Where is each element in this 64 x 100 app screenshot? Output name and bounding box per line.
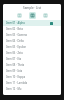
staticText: Item 08 · Theta bbox=[6, 63, 25, 67]
button[interactable]: Detail view bbox=[42, 12, 49, 19]
button[interactable]: Item 05 · Epsilon bbox=[3, 44, 61, 50]
button[interactable]: Item 04 · Delta bbox=[3, 38, 61, 44]
staticText: Item 04 · Delta bbox=[6, 39, 24, 43]
button[interactable]: Item 11 · Lambda bbox=[3, 80, 61, 86]
staticText: Item 03 · Gamma bbox=[6, 33, 28, 37]
staticText: Item 01 · Alpha bbox=[6, 21, 25, 25]
staticText: Item 11 · Lambda bbox=[6, 81, 28, 85]
staticText: Item 10 · Kappa bbox=[6, 75, 26, 79]
staticText: Item 09 · Iota bbox=[6, 69, 23, 73]
staticText: Item 06 · Zeta bbox=[6, 51, 23, 55]
button[interactable]: Item 09 · Iota bbox=[3, 68, 61, 74]
button[interactable]: Item 12 · Mu bbox=[3, 86, 61, 92]
button[interactable]: Item 06 · Zeta bbox=[3, 50, 61, 56]
button[interactable]: Item 02 · Beta bbox=[3, 26, 61, 32]
staticText: Item 05 · Epsilon bbox=[6, 45, 27, 49]
staticText: Item 12 · Mu bbox=[6, 87, 22, 91]
button[interactable]: List view bbox=[16, 12, 23, 19]
staticText: Item 07 · Eta bbox=[6, 57, 22, 61]
staticText: Item 02 · Beta bbox=[6, 27, 23, 31]
button[interactable]: Item 07 · Eta bbox=[3, 56, 61, 62]
staticText: Sample · List bbox=[23, 6, 41, 10]
button[interactable]: Grid view bbox=[29, 12, 36, 19]
button[interactable]: Item 03 · Gamma bbox=[3, 32, 61, 38]
button[interactable]: Item 01 · Alpha bbox=[3, 20, 61, 26]
other: Selected item indicator bbox=[50, 22, 53, 25]
button[interactable]: Item 08 · Theta bbox=[3, 62, 61, 68]
button[interactable]: Item 10 · Kappa bbox=[3, 74, 61, 80]
